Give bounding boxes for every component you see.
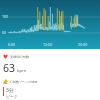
- staticText: ピーク: [6, 94, 18, 99]
- other: Heart: [3, 54, 8, 59]
- staticText: 63: [3, 61, 16, 75]
- button[interactable]: Heart: [0, 53, 100, 76]
- button[interactable]: Heart rate zone: [0, 78, 100, 100]
- staticText: bpm: [17, 68, 27, 74]
- staticText: 安静時心拍数: [10, 55, 30, 59]
- staticText: 20:00: [78, 42, 88, 47]
- staticText: 50: [2, 30, 7, 35]
- staticText: 心拍数ゾーンの時間: [10, 80, 38, 84]
- staticText: 6:00: [8, 42, 16, 47]
- staticText: 100: [2, 14, 9, 19]
- other: Heart rate zone: [3, 79, 8, 84]
- staticText: 12:00: [43, 42, 53, 47]
- staticText: 3分: [6, 87, 14, 94]
